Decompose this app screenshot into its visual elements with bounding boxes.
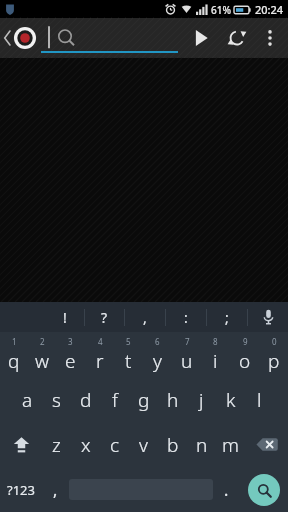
- button[interactable]: 7: [172, 332, 201, 377]
- staticText: 2: [40, 336, 45, 347]
- staticText: ,: [143, 308, 147, 327]
- button[interactable]: ,: [42, 467, 69, 512]
- staticText: ?: [101, 308, 108, 327]
- staticText: ;: [225, 308, 229, 327]
- staticText: z: [52, 432, 61, 458]
- staticText: ?123: [7, 481, 35, 499]
- button[interactable]: m: [216, 422, 245, 467]
- button[interactable]: 3: [56, 332, 85, 377]
- staticText: a: [22, 387, 33, 413]
- button[interactable]: 5: [114, 332, 143, 377]
- button[interactable]: Voice input: [248, 302, 288, 332]
- button[interactable]: n: [187, 422, 216, 467]
- button[interactable]: k: [216, 377, 245, 422]
- staticText: u: [181, 348, 193, 374]
- button[interactable]: s: [42, 377, 71, 422]
- staticText: 8: [213, 336, 218, 347]
- staticText: j: [199, 387, 204, 413]
- staticText: 20:24: [255, 2, 284, 17]
- staticText: 1: [12, 336, 17, 347]
- button[interactable]: g: [129, 377, 158, 422]
- button[interactable]: Play: [184, 18, 218, 58]
- button[interactable]: Delete: [245, 422, 288, 467]
- button[interactable]: 4: [85, 332, 114, 377]
- staticText: x: [81, 432, 91, 458]
- staticText: .: [224, 479, 229, 501]
- staticText: 61%: [211, 3, 231, 17]
- staticText: b: [167, 432, 179, 458]
- staticText: p: [268, 348, 280, 374]
- staticText: r: [96, 348, 104, 374]
- button[interactable]: .: [213, 467, 240, 512]
- button[interactable]: Space: [69, 467, 213, 512]
- staticText: y: [153, 348, 162, 374]
- staticText: !: [63, 308, 67, 327]
- button[interactable]: j: [187, 377, 216, 422]
- button[interactable]: !: [45, 302, 84, 332]
- button[interactable]: x: [71, 422, 100, 467]
- staticText: i: [213, 348, 218, 374]
- button[interactable]: :: [166, 302, 206, 332]
- button[interactable]: c: [100, 422, 129, 467]
- button[interactable]: d: [71, 377, 100, 422]
- staticText: 9: [243, 336, 248, 347]
- button[interactable]: ?123: [0, 467, 42, 512]
- button[interactable]: l: [245, 377, 274, 422]
- staticText: 7: [185, 336, 190, 347]
- staticText: 4: [98, 336, 103, 347]
- staticText: h: [167, 387, 179, 413]
- button[interactable]: h: [158, 377, 187, 422]
- staticText: k: [226, 387, 236, 413]
- staticText: :: [184, 308, 188, 327]
- staticText: c: [110, 432, 120, 458]
- button[interactable]: 8: [201, 332, 230, 377]
- button[interactable]: ;: [207, 302, 247, 332]
- button[interactable]: More options: [256, 18, 284, 58]
- button[interactable]: ?: [85, 302, 124, 332]
- button[interactable]: Shift: [0, 422, 42, 467]
- staticText: ,: [53, 479, 58, 501]
- staticText: 0: [272, 336, 277, 347]
- staticText: 6: [155, 336, 160, 347]
- staticText: e: [65, 348, 76, 374]
- staticText: t: [125, 348, 132, 374]
- button[interactable]: [41, 18, 178, 58]
- staticText: o: [239, 348, 251, 374]
- button[interactable]: f: [100, 377, 129, 422]
- button[interactable]: 9: [230, 332, 259, 377]
- staticText: 3: [68, 336, 73, 347]
- button[interactable]: Refresh: [218, 18, 256, 58]
- staticText: v: [139, 432, 148, 458]
- staticText: g: [138, 387, 150, 413]
- button[interactable]: 0: [259, 332, 288, 377]
- staticText: n: [196, 432, 208, 458]
- staticText: d: [80, 387, 92, 413]
- staticText: f: [112, 387, 118, 413]
- button[interactable]: ,: [125, 302, 165, 332]
- staticText: q: [8, 348, 20, 374]
- staticText: w: [35, 348, 49, 374]
- button[interactable]: 2: [28, 332, 56, 377]
- staticText: 5: [126, 336, 131, 347]
- button[interactable]: a: [13, 377, 42, 422]
- button[interactable]: Navigate up: [0, 26, 41, 50]
- button[interactable]: b: [158, 422, 187, 467]
- button[interactable]: Search: [240, 467, 288, 512]
- button[interactable]: 1: [0, 332, 28, 377]
- staticText: s: [52, 387, 61, 413]
- button[interactable]: z: [42, 422, 71, 467]
- button[interactable]: 6: [143, 332, 172, 377]
- staticText: l: [257, 387, 262, 413]
- staticText: m: [222, 432, 239, 458]
- button[interactable]: v: [129, 422, 158, 467]
